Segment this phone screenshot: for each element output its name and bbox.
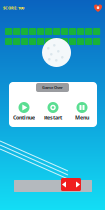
button[interactable]: Restart: [38, 102, 67, 126]
button[interactable]: Menu: [67, 102, 96, 126]
staticText: Game Over: [42, 85, 63, 90]
staticText: Continue: [13, 114, 35, 121]
staticText: 100: [17, 5, 24, 11]
staticText: Menu: [75, 114, 89, 121]
staticText: SCORE:: [3, 5, 17, 11]
button[interactable]: Continue: [9, 102, 38, 126]
staticText: Restart: [44, 114, 62, 121]
button[interactable]: Move paddle: [61, 178, 81, 191]
